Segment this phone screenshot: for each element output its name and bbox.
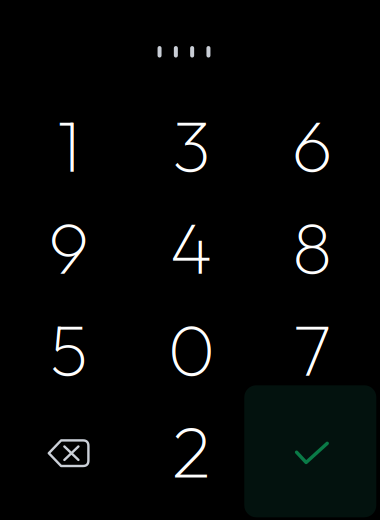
button[interactable]: Delete <box>8 403 130 503</box>
button[interactable]: 3 <box>130 95 252 195</box>
staticText: 1 <box>57 100 81 190</box>
staticText: 8 <box>292 202 332 292</box>
button[interactable]: Confirm <box>244 385 376 517</box>
staticText: 6 <box>292 100 333 190</box>
button[interactable]: 9 <box>8 197 130 297</box>
button[interactable]: 4 <box>130 197 252 297</box>
staticText: 3 <box>172 100 210 190</box>
staticText: 9 <box>48 202 89 292</box>
button[interactable]: 5 <box>8 299 130 399</box>
staticText: 4 <box>170 202 213 292</box>
staticText: 7 <box>293 304 331 394</box>
button[interactable]: 0 <box>130 299 252 399</box>
staticText: 2 <box>172 405 211 496</box>
button[interactable]: 2 <box>130 401 252 501</box>
button[interactable]: 7 <box>251 299 373 399</box>
button[interactable]: 1 <box>8 95 130 195</box>
button[interactable]: 6 <box>251 95 373 195</box>
staticText: 0 <box>168 304 215 394</box>
staticText: 5 <box>50 304 88 394</box>
button[interactable]: 8 <box>251 197 373 297</box>
